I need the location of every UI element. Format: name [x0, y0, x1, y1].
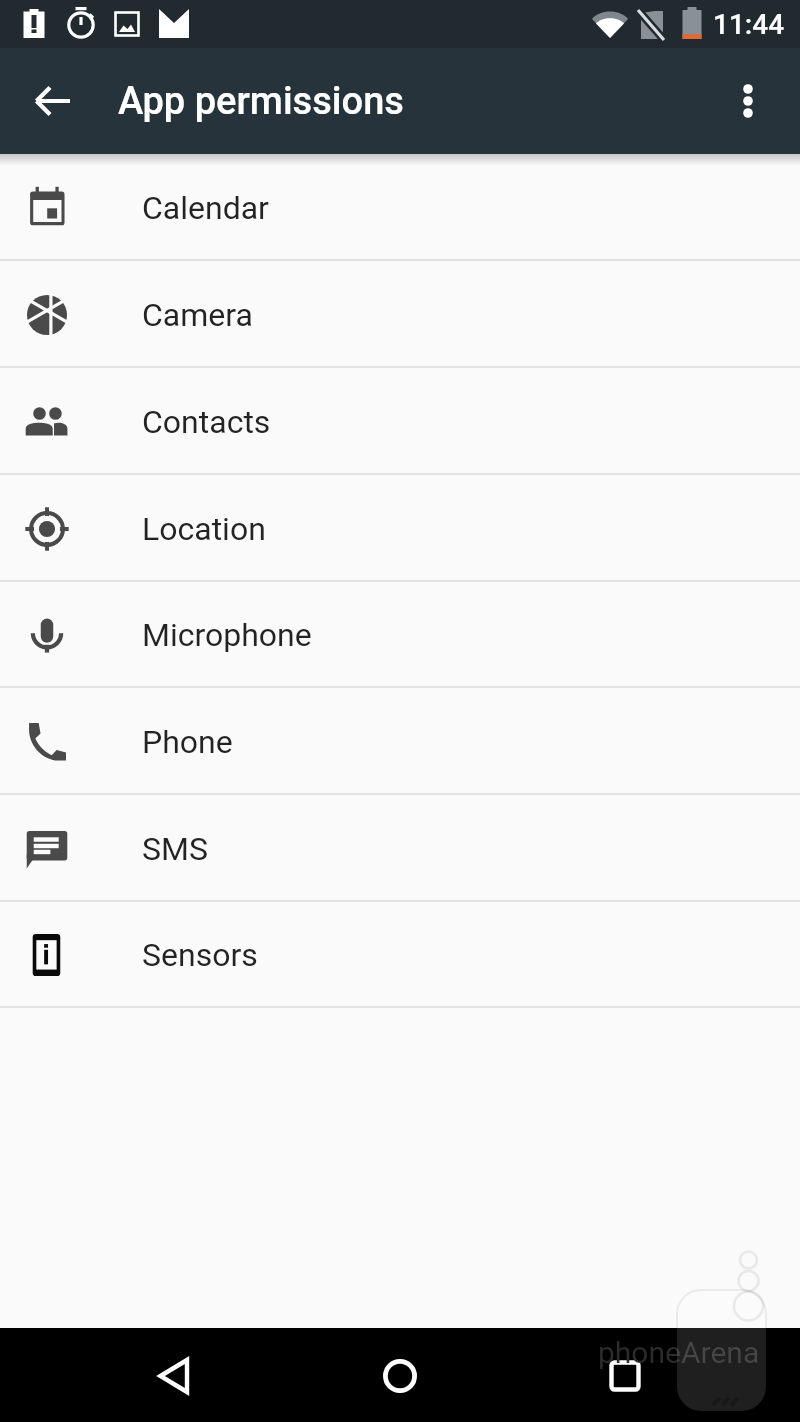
button[interactable]: Location — [0, 475, 800, 582]
staticText: Contacts — [142, 403, 271, 441]
button[interactable]: Back — [131, 1332, 219, 1420]
button[interactable]: Calendar — [0, 154, 800, 261]
button[interactable]: Microphone — [0, 582, 800, 688]
staticText: SMS — [142, 830, 208, 868]
staticText: Sensors — [142, 936, 258, 974]
button[interactable]: More options — [694, 48, 800, 154]
staticText: Location — [142, 510, 266, 548]
button[interactable]: SMS — [0, 795, 800, 902]
button[interactable]: Sensors — [0, 902, 800, 1008]
staticText: App permissions — [118, 79, 404, 124]
staticText: Microphone — [142, 616, 312, 654]
staticText: Calendar — [142, 189, 269, 227]
button[interactable]: Recent apps — [581, 1332, 669, 1420]
button[interactable]: Phone — [0, 688, 800, 795]
staticText: Phone — [142, 723, 233, 761]
staticText: 11:44 — [713, 8, 785, 41]
button[interactable]: Camera — [0, 261, 800, 368]
staticText: phoneArena — [598, 1335, 760, 1370]
button[interactable]: Contacts — [0, 368, 800, 475]
staticText: Camera — [142, 296, 253, 334]
button[interactable]: Navigate up — [0, 48, 106, 154]
button[interactable]: Home — [356, 1332, 444, 1420]
